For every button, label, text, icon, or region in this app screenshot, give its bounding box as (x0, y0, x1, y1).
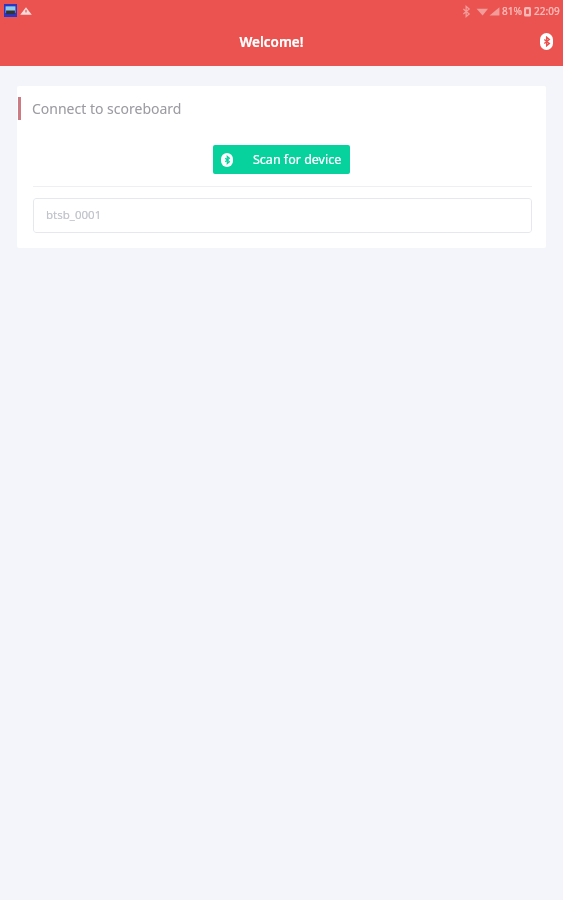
staticText: Scan for device (253, 151, 342, 168)
staticText: 81% (502, 4, 522, 18)
staticText: 22:09 (534, 4, 560, 18)
staticText: Welcome! (239, 33, 304, 51)
button[interactable]: Scan for device (213, 145, 350, 174)
button[interactable]: btsb_0001 (33, 198, 532, 233)
staticText: Connect to scoreboard (32, 99, 182, 118)
button[interactable]: Bluetooth (532, 27, 560, 55)
staticText: btsb_0001 (46, 207, 102, 223)
